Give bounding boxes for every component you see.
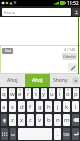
- button[interactable]: 7: [49, 88, 55, 99]
- staticText: k: [65, 103, 69, 111]
- button[interactable]: 2: [9, 88, 15, 99]
- button[interactable]: g: [36, 101, 43, 112]
- staticText: e: [18, 90, 22, 98]
- button[interactable]: z: [9, 114, 16, 126]
- button[interactable]: Backspace: [72, 114, 79, 126]
- button[interactable]: 4: [25, 88, 31, 99]
- staticText: f: [29, 103, 32, 111]
- staticText: 1: [3, 88, 5, 92]
- staticText: 12#: [63, 132, 70, 137]
- button[interactable]: 1: [1, 88, 7, 99]
- button[interactable]: Enter: [72, 128, 79, 140]
- staticText: cz: [11, 132, 15, 137]
- staticText: 8: [59, 88, 61, 92]
- staticText: 9: [67, 88, 69, 92]
- staticText: w: [10, 90, 15, 98]
- button[interactable]: Numbers and symbols: [63, 128, 70, 140]
- button[interactable]: m: [63, 114, 70, 126]
- staticText: 7: [51, 88, 53, 92]
- button[interactable]: j: [54, 101, 61, 112]
- button[interactable]: d: [18, 101, 25, 112]
- button[interactable]: Pick contact: [72, 8, 80, 16]
- button[interactable]: 6: [41, 88, 47, 99]
- staticText: Komu: [4, 10, 16, 15]
- button[interactable]: Shift: [1, 114, 7, 126]
- staticText: .: [57, 130, 59, 138]
- staticText: q: [2, 90, 6, 98]
- staticText: a: [2, 103, 6, 111]
- staticText: Text: [5, 49, 11, 53]
- staticText: b: [47, 116, 51, 124]
- button[interactable]: 3: [17, 88, 23, 99]
- staticText: d: [20, 103, 24, 111]
- staticText: n: [56, 116, 60, 124]
- staticText: 0: [75, 88, 77, 92]
- button[interactable]: Ahoj: [0, 74, 25, 87]
- button[interactable]: x: [18, 114, 25, 126]
- staticText: i: [59, 90, 61, 98]
- staticText: 3: [19, 88, 21, 92]
- staticText: p: [74, 90, 78, 98]
- staticText: Ahoj: [7, 77, 18, 84]
- button[interactable]: v: [36, 114, 43, 126]
- button[interactable]: .: [54, 128, 61, 140]
- staticText: s: [11, 103, 14, 111]
- button[interactable]: f: [27, 101, 34, 112]
- button[interactable]: Shony: [50, 74, 71, 87]
- button[interactable]: Odeslat: [62, 53, 77, 60]
- button[interactable]: b: [45, 114, 52, 126]
- staticText: v: [38, 116, 42, 124]
- button[interactable]: [18, 128, 52, 140]
- button[interactable]: 0: [73, 88, 79, 99]
- button[interactable]: s: [9, 101, 16, 112]
- staticText: x: [20, 116, 24, 124]
- button[interactable]: Ahoj: [25, 74, 50, 87]
- button[interactable]: l: [72, 101, 79, 112]
- staticText: 11:52: [67, 0, 79, 6]
- button[interactable]: a: [1, 101, 7, 112]
- staticText: Odeslat: [63, 54, 76, 59]
- button[interactable]: 5: [33, 88, 39, 99]
- button[interactable]: Language: [10, 128, 16, 140]
- staticText: Shony: [53, 77, 68, 84]
- staticText: y: [42, 90, 46, 98]
- button[interactable]: n: [54, 114, 61, 126]
- button[interactable]: h: [45, 101, 52, 112]
- button[interactable]: 9: [65, 88, 71, 99]
- staticText: l: [75, 103, 77, 111]
- staticText: 4: [27, 88, 29, 92]
- staticText: o: [66, 90, 70, 98]
- staticText: 4 / 140: [64, 47, 76, 52]
- staticText: t: [35, 90, 38, 98]
- button[interactable]: 8: [57, 88, 63, 99]
- staticText: 2: [11, 88, 13, 92]
- button[interactable]: Text: [2, 48, 13, 54]
- button[interactable]: Attach: [68, 63, 77, 72]
- staticText: u: [50, 90, 54, 98]
- staticText: j: [57, 103, 59, 111]
- staticText: g: [38, 103, 42, 111]
- button[interactable]: k: [63, 101, 70, 112]
- staticText: 5: [35, 88, 37, 92]
- button[interactable]: Keyboard settings: [1, 128, 8, 140]
- staticText: r: [27, 90, 30, 98]
- staticText: Ahoj: [32, 77, 43, 84]
- staticText: 6: [43, 88, 45, 92]
- button[interactable]: More suggestions: [71, 74, 80, 87]
- button[interactable]: Komu: [2, 8, 71, 16]
- staticText: z: [11, 116, 14, 124]
- staticText: h: [47, 103, 51, 111]
- button[interactable]: c: [27, 114, 34, 126]
- staticText: m: [64, 116, 70, 124]
- staticText: c: [29, 116, 32, 124]
